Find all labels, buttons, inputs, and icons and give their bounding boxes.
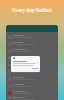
button[interactable]: [6, 89, 58, 96]
button[interactable]: OK: [32, 68, 38, 69]
button[interactable]: [6, 75, 58, 82]
button[interactable]: [6, 40, 58, 47]
button[interactable]: [6, 96, 58, 100]
button[interactable]: [6, 68, 58, 75]
button[interactable]: [6, 54, 58, 61]
button[interactable]: [6, 47, 58, 54]
button[interactable]: [6, 33, 58, 40]
button[interactable]: [6, 61, 58, 68]
button[interactable]: [6, 82, 58, 89]
staticText: Every day Hadiah: [0, 7, 64, 13]
